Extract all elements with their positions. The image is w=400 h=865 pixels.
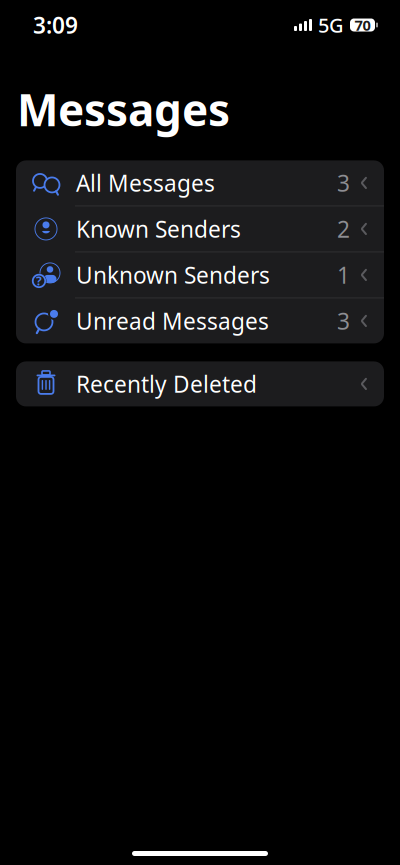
button[interactable]: Known Senders: [16, 206, 384, 252]
staticText: 3: [337, 168, 350, 198]
staticText: All Messages: [76, 168, 215, 198]
button[interactable]: All Messages: [16, 160, 384, 206]
staticText: Known Senders: [76, 214, 241, 244]
staticText: Messages: [17, 80, 230, 138]
button[interactable]: Recently Deleted: [16, 361, 384, 406]
staticText: 2: [337, 214, 350, 244]
button[interactable]: ?: [16, 252, 384, 298]
staticText: Unread Messages: [76, 306, 269, 336]
staticText: ?: [36, 273, 42, 289]
staticText: 5G: [318, 12, 344, 38]
staticText: 3:09: [33, 10, 78, 40]
staticText: Unknown Senders: [76, 260, 270, 290]
staticText: 1: [337, 260, 350, 290]
staticText: Recently Deleted: [76, 369, 257, 399]
staticText: 3: [337, 306, 350, 336]
staticText: 70: [354, 15, 370, 35]
button[interactable]: Unread Messages: [16, 298, 384, 343]
